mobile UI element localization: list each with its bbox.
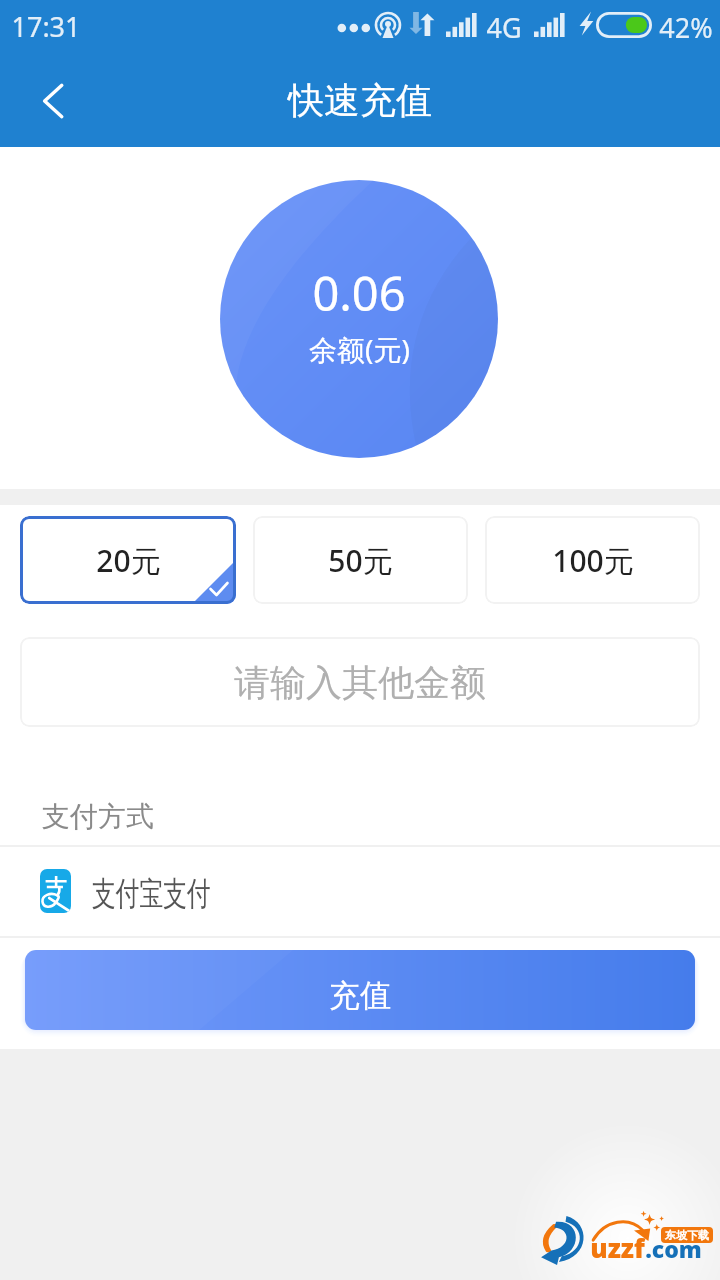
staticText: 快速充值 [288,78,432,123]
staticText: uzzf [590,1230,645,1265]
staticText: 0.06 [312,261,406,325]
staticText: .com [645,1233,702,1264]
staticText: 50元 [328,540,393,581]
button[interactable]: 20元 [20,516,236,604]
staticText: 42% [659,9,713,46]
button[interactable]: 请输入其他金额 [20,637,700,727]
staticText: 支付宝支付 [92,873,211,915]
button[interactable]: 50元 [253,516,468,604]
staticText: 请输入其他金额 [234,660,486,705]
staticText: 充值 [329,976,391,1015]
button[interactable]: 支付宝支付 [0,846,720,936]
staticText: 4G [486,9,522,46]
staticText: 17:31 [11,8,81,45]
button[interactable]: Back [14,59,92,143]
staticText: 东坡下载 [665,1228,709,1242]
staticText: 100元 [552,540,634,581]
staticText: 20元 [96,540,161,581]
button[interactable]: 充值 [25,950,695,1030]
staticText: 余额(元) [309,330,410,368]
staticText: 支付方式 [42,799,154,834]
button[interactable]: 100元 [485,516,700,604]
